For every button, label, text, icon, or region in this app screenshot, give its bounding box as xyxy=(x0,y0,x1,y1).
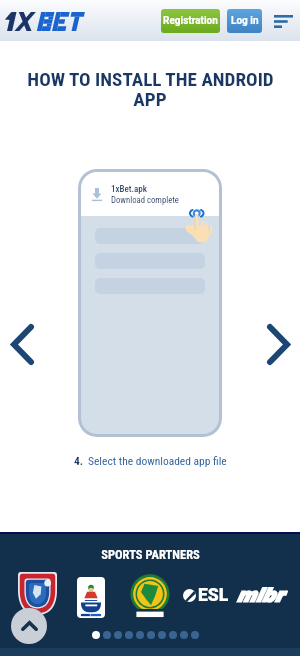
button[interactable] xyxy=(191,631,199,639)
button[interactable] xyxy=(169,631,177,639)
button[interactable] xyxy=(114,631,122,639)
button[interactable] xyxy=(125,631,133,639)
staticText: ESL xyxy=(198,585,229,606)
button[interactable]: Menu xyxy=(271,9,295,33)
button[interactable] xyxy=(103,631,111,639)
staticText: Log in xyxy=(231,15,259,27)
staticText: mibr xyxy=(236,585,283,606)
staticText: APP xyxy=(133,88,167,111)
button[interactable] xyxy=(147,631,155,639)
button[interactable] xyxy=(158,631,166,639)
staticText: HOW TO INSTALL THE ANDROID xyxy=(27,68,274,91)
staticText: Select the downloaded app file xyxy=(88,454,227,467)
button[interactable]: Log in xyxy=(227,9,262,33)
button[interactable]: Previous step xyxy=(4,317,40,371)
button[interactable] xyxy=(92,631,100,639)
button[interactable]: Scroll to top xyxy=(11,608,47,644)
staticText: Registration xyxy=(163,15,218,27)
staticText: 4. xyxy=(74,454,84,467)
button[interactable] xyxy=(180,631,188,639)
staticText: SPORTS PARTNERS xyxy=(101,547,200,562)
button[interactable]: Next step xyxy=(260,317,296,371)
button[interactable] xyxy=(136,631,144,639)
staticText: 1xBet.apk xyxy=(111,184,147,195)
button[interactable]: Registration xyxy=(161,9,220,33)
staticText: Download complete xyxy=(111,195,179,205)
